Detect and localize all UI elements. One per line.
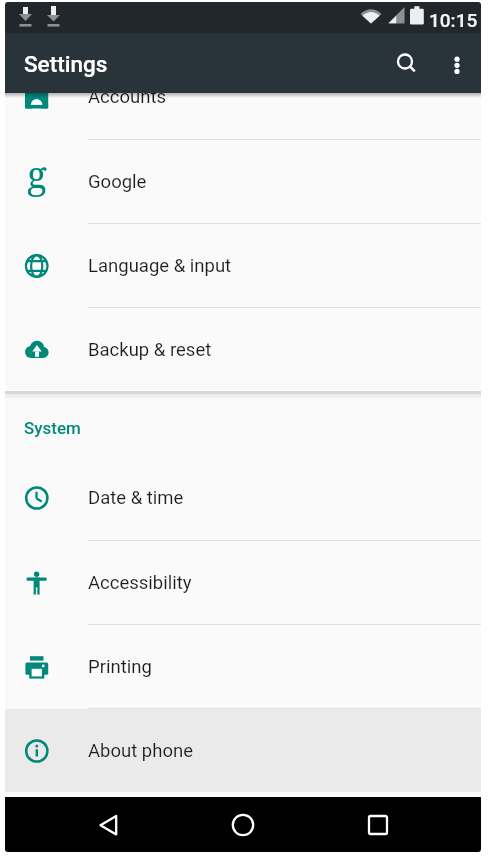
staticText: Accessibility: [88, 572, 192, 594]
button[interactable]: Backup & reset: [5, 308, 481, 391]
button[interactable]: [443, 49, 471, 77]
staticText: Date & time: [88, 487, 184, 509]
button[interactable]: [389, 47, 421, 79]
button[interactable]: [85, 802, 133, 850]
staticText: Language & input: [88, 255, 232, 277]
button[interactable]: [354, 802, 402, 850]
button[interactable]: About phone: [5, 709, 481, 792]
staticText: 10:15: [429, 9, 478, 31]
staticText: Accounts: [88, 86, 167, 108]
staticText: About phone: [88, 740, 194, 762]
button[interactable]: Accounts: [5, 55, 481, 139]
button[interactable]: Language & input: [5, 224, 481, 307]
staticText: Backup & reset: [88, 339, 212, 361]
button[interactable]: [219, 802, 267, 850]
button[interactable]: g: [5, 140, 481, 223]
button[interactable]: Printing: [5, 625, 481, 708]
staticText: Settings: [24, 51, 108, 77]
staticText: g: [27, 148, 47, 172]
button[interactable]: Accessibility: [5, 541, 481, 624]
staticText: Google: [88, 171, 147, 193]
staticText: Printing: [88, 656, 152, 678]
staticText: System: [24, 418, 81, 438]
button[interactable]: Date & time: [5, 456, 481, 540]
